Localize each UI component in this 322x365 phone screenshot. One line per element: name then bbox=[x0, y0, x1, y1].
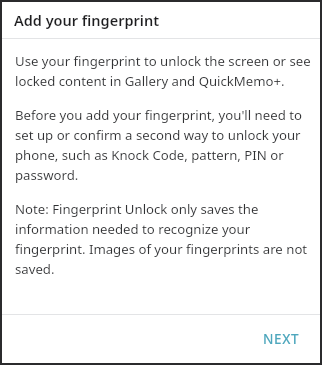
staticText: Note: Fingerprint Unlock only saves the … bbox=[15, 200, 312, 277]
staticText: Use your fingerprint to unlock the scree… bbox=[15, 52, 312, 89]
staticText: Before you add your fingerprint, you'll … bbox=[15, 106, 312, 183]
button[interactable]: NEXT bbox=[253, 322, 310, 356]
staticText: NEXT bbox=[263, 330, 300, 348]
staticText: Add your fingerprint bbox=[14, 10, 160, 30]
